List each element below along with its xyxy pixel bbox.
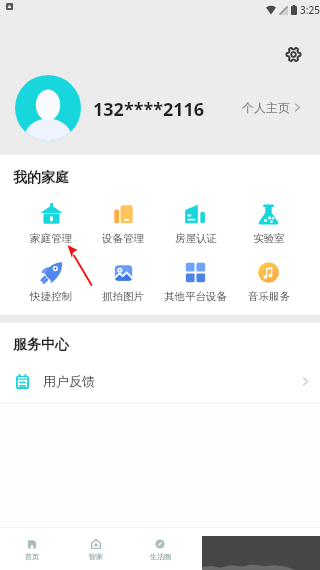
button[interactable]: 抓拍图片: [87, 261, 159, 303]
staticText: 音乐服务: [248, 290, 290, 303]
staticText: 快捷控制: [30, 290, 72, 303]
button[interactable]: 用户反馈: [0, 362, 320, 400]
button[interactable]: Settings: [281, 42, 305, 66]
staticText: 家庭管理: [30, 232, 72, 245]
staticText: 设备管理: [102, 232, 144, 245]
staticText: 个人主页: [242, 100, 290, 115]
button[interactable]: 商城: [192, 539, 256, 561]
staticText: 服务中心: [13, 336, 69, 354]
button[interactable]: Avatar: [15, 75, 81, 141]
staticText: 我的家庭: [13, 169, 69, 187]
button[interactable]: 首页: [0, 539, 64, 561]
staticText: 智家: [89, 552, 103, 561]
button[interactable]: 设备管理: [87, 203, 159, 245]
staticText: 房屋认证: [175, 232, 217, 245]
button[interactable]: 家庭管理: [15, 203, 87, 245]
staticText: 生活圈: [150, 552, 171, 561]
staticText: 首页: [25, 552, 39, 561]
staticText: 132****2116: [93, 97, 205, 122]
button[interactable]: 智家: [64, 539, 128, 561]
staticText: 3:25: [300, 3, 320, 17]
staticText: 抓拍图片: [102, 290, 144, 303]
button[interactable]: 个人主页: [238, 97, 304, 118]
button[interactable]: 快捷控制: [15, 261, 87, 303]
button[interactable]: 实验室: [232, 203, 305, 245]
button[interactable]: 生活圈: [128, 539, 192, 561]
button[interactable]: 其他平台设备: [159, 261, 232, 303]
button[interactable]: 房屋认证: [159, 203, 232, 245]
staticText: 其他平台设备: [164, 290, 227, 303]
button[interactable]: 音乐服务: [232, 261, 305, 303]
staticText: 实验室: [253, 232, 285, 245]
staticText: 用户反馈: [43, 373, 95, 389]
